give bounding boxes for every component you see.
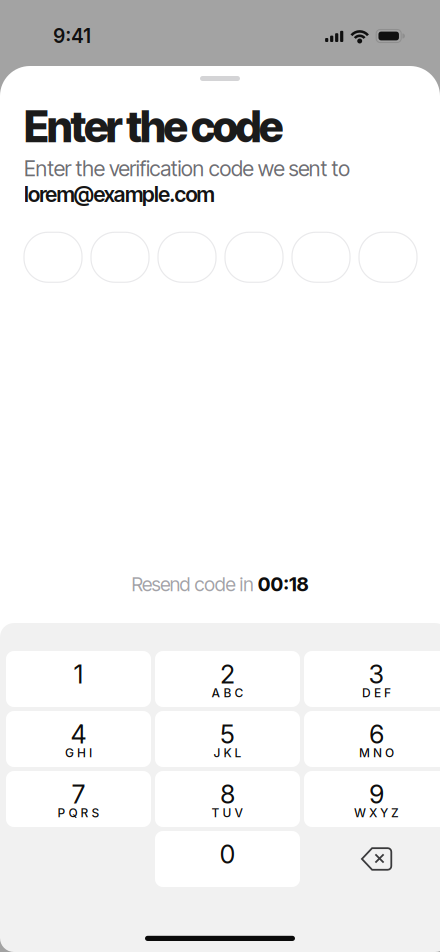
- button[interactable]: 0: [155, 831, 300, 887]
- button[interactable]: Code digit: [91, 232, 149, 282]
- staticText: 9:41: [53, 24, 91, 48]
- button[interactable]: 3: [304, 651, 440, 707]
- staticText: W X Y Z: [354, 806, 399, 820]
- staticText: D E F: [362, 686, 391, 700]
- button[interactable]: Code digit: [158, 232, 216, 282]
- staticText: Enter the verification code we sent to: [24, 156, 350, 181]
- staticText: 3: [368, 659, 384, 690]
- staticText: 8: [220, 779, 235, 810]
- button[interactable]: 6: [304, 711, 440, 767]
- staticText: M N O: [359, 746, 394, 760]
- button[interactable]: 8: [155, 771, 300, 827]
- staticText: Resend code in: [131, 573, 258, 596]
- staticText: 7: [71, 779, 85, 810]
- staticText: 4: [70, 719, 86, 750]
- staticText: J K L: [213, 746, 241, 760]
- button[interactable]: 7: [6, 771, 151, 827]
- button[interactable]: 1: [6, 651, 151, 707]
- button[interactable]: Delete: [304, 831, 440, 887]
- staticText: lorem@example.com: [24, 181, 215, 207]
- staticText: 1: [73, 659, 83, 690]
- staticText: 9: [369, 779, 384, 810]
- staticText: 2: [220, 659, 235, 690]
- button[interactable]: 5: [155, 711, 300, 767]
- button[interactable]: 2: [155, 651, 300, 707]
- button[interactable]: Code digit: [292, 232, 350, 282]
- button[interactable]: 9: [304, 771, 440, 827]
- staticText: 0: [219, 839, 235, 870]
- button[interactable]: 4: [6, 711, 151, 767]
- staticText: A B C: [211, 686, 243, 700]
- staticText: T U V: [211, 806, 243, 820]
- staticText: 00:18: [258, 573, 309, 596]
- staticText: Enter the code: [24, 101, 283, 153]
- staticText: P Q R S: [57, 806, 99, 820]
- button[interactable]: Code digit: [225, 232, 283, 282]
- staticText: G H I: [65, 746, 92, 760]
- staticText: 5: [220, 719, 235, 750]
- button[interactable]: Code digit: [24, 232, 82, 282]
- staticText: 6: [369, 719, 384, 750]
- button[interactable]: Code digit: [359, 232, 417, 282]
